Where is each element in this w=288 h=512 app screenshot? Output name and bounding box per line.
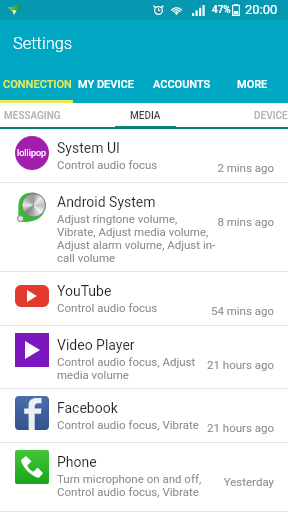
staticText: Settings: [13, 34, 73, 53]
staticText: CONNECTION: [3, 78, 72, 91]
button[interactable]: YouTube: [0, 272, 288, 326]
staticText: call volume: [57, 251, 116, 264]
staticText: Control audio focus: [57, 158, 158, 171]
staticText: Adjust alarm volume, Adjust in-: [57, 238, 216, 251]
button[interactable]: Android System: [0, 183, 288, 272]
staticText: 21 hours ago: [207, 421, 274, 434]
button[interactable]: DEVICE: [240, 103, 288, 129]
staticText: Video Player: [57, 337, 135, 353]
staticText: 8 mins ago: [217, 215, 274, 228]
staticText: Yesterday: [223, 475, 274, 488]
staticText: Vibrate, Adjust media volume,: [57, 225, 209, 238]
staticText: 2 mins ago: [217, 161, 274, 174]
staticText: 20:00: [245, 2, 278, 17]
staticText: YouTube: [57, 283, 112, 299]
button[interactable]: MY DEVICE: [74, 68, 138, 100]
staticText: Facebook: [57, 400, 118, 416]
button[interactable]: CONNECTION: [0, 68, 74, 100]
button[interactable]: MESSAGING: [0, 103, 64, 129]
button[interactable]: lollipop: [0, 129, 288, 183]
staticText: Adjust ringtone volume,: [57, 212, 178, 225]
button[interactable]: Video Player: [0, 326, 288, 389]
button[interactable]: Facebook: [0, 389, 288, 443]
staticText: ACCOUNTS: [153, 78, 211, 91]
staticText: 54 mins ago: [210, 304, 274, 317]
staticText: MESSAGING: [4, 110, 61, 122]
staticText: 47%: [212, 4, 231, 16]
staticText: MY DEVICE: [78, 78, 134, 91]
other: Notification: [8, 5, 22, 15]
staticText: 21 hours ago: [207, 358, 274, 371]
staticText: media volume: [57, 368, 129, 381]
staticText: Android System: [57, 194, 156, 210]
button[interactable]: Phone: [0, 443, 288, 512]
button[interactable]: MORE: [221, 68, 284, 100]
staticText: Control audio focus, Vibrate: [57, 485, 199, 498]
staticText: MORE: [237, 78, 268, 91]
staticText: lollipop: [17, 148, 47, 159]
staticText: Turn microphone on and off,: [57, 472, 202, 485]
staticText: Control audio focus, Adjust: [57, 355, 196, 368]
staticText: MEDIA: [130, 110, 161, 122]
button[interactable]: MEDIA: [115, 103, 176, 129]
staticText: Phone: [57, 454, 97, 470]
staticText: System UI: [57, 140, 120, 156]
staticText: Control audio focus: [57, 301, 158, 314]
staticText: DEVICE: [254, 110, 288, 122]
button[interactable]: ACCOUNTS: [138, 68, 226, 100]
staticText: Control audio focus, Vibrate: [57, 418, 199, 431]
